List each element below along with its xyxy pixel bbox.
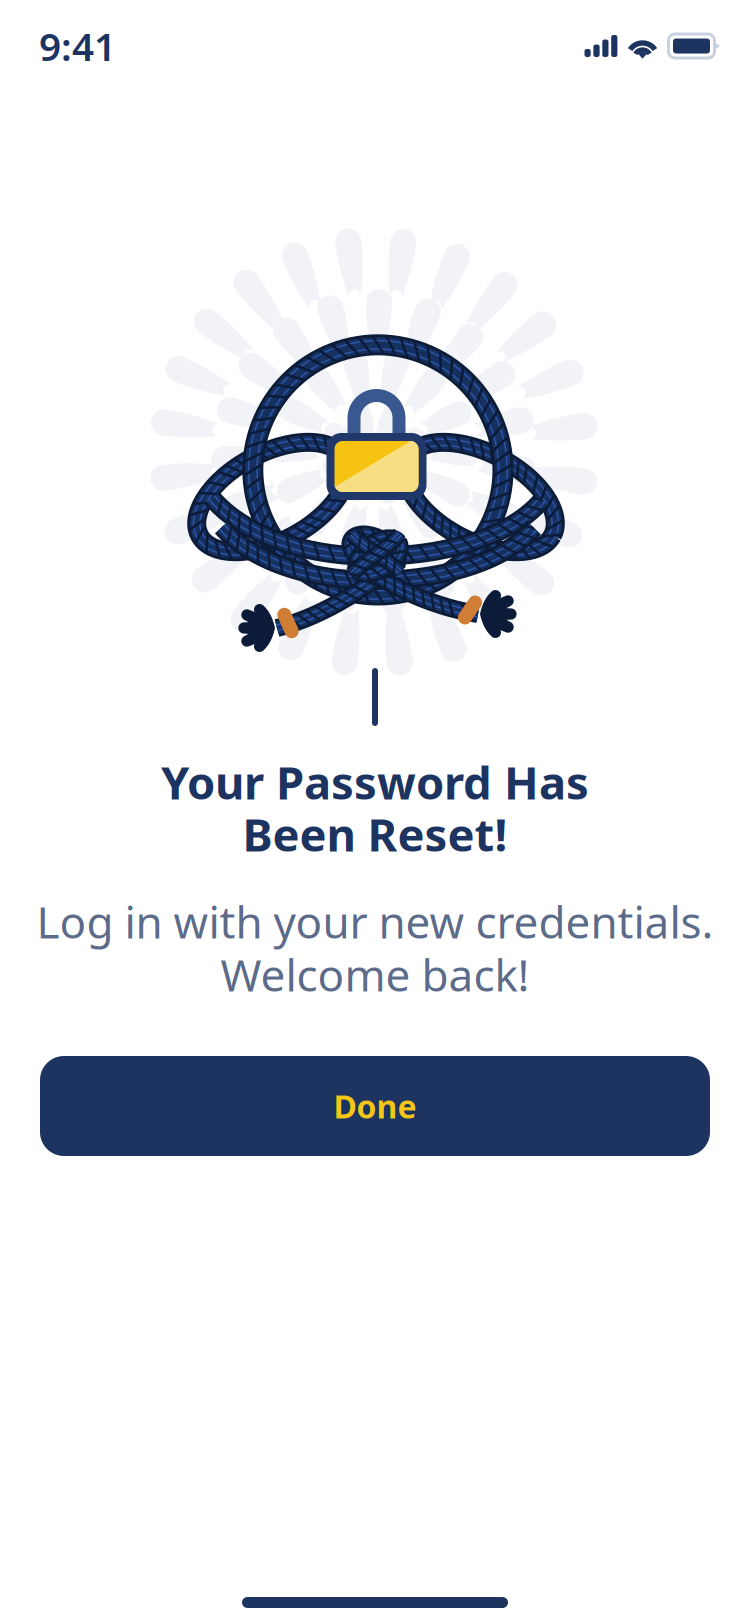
staticText: Welcome back!	[220, 945, 529, 1004]
button[interactable]: Done	[40, 1056, 710, 1156]
staticText: Been Reset!	[242, 804, 507, 864]
staticText: Done	[333, 1085, 416, 1127]
staticText: Log in with your new credentials.	[36, 892, 713, 951]
staticText: Your Password Has	[161, 752, 589, 812]
staticText: 9:41	[39, 20, 116, 72]
